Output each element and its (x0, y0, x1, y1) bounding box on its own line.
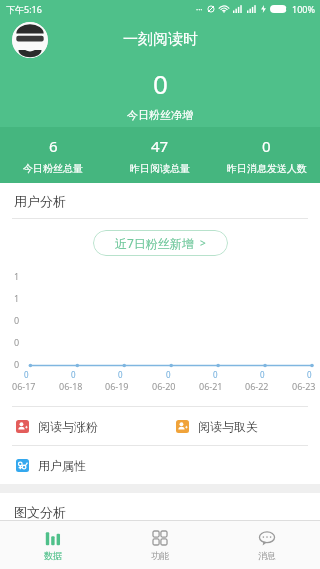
staticText: 功能 (151, 550, 169, 561)
staticText: 06-17 (12, 380, 36, 392)
staticText: 0 (118, 369, 123, 380)
staticText: 1 (14, 270, 20, 282)
staticText: 图文分析 (14, 504, 66, 520)
staticText: 100% (292, 3, 315, 15)
staticText: 0 (262, 136, 271, 156)
staticText: 今日粉丝净增 (127, 108, 193, 122)
button[interactable]: 功能 (106, 521, 213, 569)
staticText: 下午5:16 (6, 3, 42, 15)
staticText: 阅读与取关 (198, 419, 258, 434)
button[interactable]: 近7日粉丝新增 (93, 230, 228, 256)
staticText: 47 (151, 136, 169, 156)
staticText: 阅读与涨粉 (38, 419, 98, 434)
staticText: 06-18 (59, 380, 83, 392)
staticText: 0 (14, 358, 20, 370)
staticText: 昨日阅读总量 (130, 162, 190, 175)
staticText: 今日粉丝总量 (23, 162, 83, 175)
staticText: 0 (153, 66, 168, 101)
button[interactable]: 0 (213, 127, 320, 183)
staticText: 用户分析 (14, 193, 66, 209)
staticText: 0 (166, 369, 171, 380)
staticText: 0 (260, 369, 265, 380)
button[interactable]: Profile (12, 22, 48, 58)
staticText: 消息 (258, 550, 276, 561)
staticText: 0 (14, 336, 20, 348)
staticText: 0 (213, 369, 218, 380)
staticText: 昨日消息发送人数 (227, 162, 307, 175)
staticText: 06-19 (105, 380, 129, 392)
button[interactable]: 用户属性 (0, 446, 160, 484)
staticText: > (200, 236, 206, 250)
staticText: 用户属性 (38, 458, 86, 473)
staticText: 1 (14, 292, 20, 304)
button[interactable]: 47 (106, 127, 213, 183)
staticText: 数据 (44, 550, 62, 561)
staticText: 0 (14, 314, 20, 326)
button[interactable]: 阅读与涨粉 (0, 407, 160, 445)
staticText: 近7日粉丝新增 (115, 235, 194, 251)
staticText: 0 (71, 369, 76, 380)
button[interactable]: 阅读与取关 (160, 407, 320, 445)
staticText: 0 (24, 369, 29, 380)
staticText: 06-20 (152, 380, 176, 392)
staticText: 0 (307, 369, 312, 380)
staticText: 一刻阅读时 (123, 30, 198, 49)
staticText: 6 (49, 136, 58, 156)
staticText: 06-21 (199, 380, 223, 392)
button[interactable]: 消息 (213, 521, 320, 569)
staticText: ··· (196, 4, 203, 15)
button[interactable]: 数据 (0, 521, 106, 569)
staticText: 06-23 (292, 380, 316, 392)
button[interactable]: 6 (0, 127, 106, 183)
staticText: 06-22 (245, 380, 269, 392)
